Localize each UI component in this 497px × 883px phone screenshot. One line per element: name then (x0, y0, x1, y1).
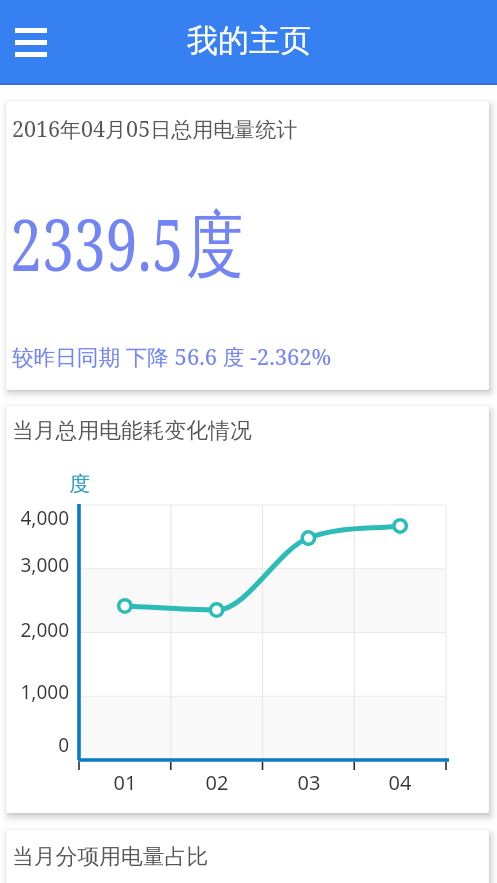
staticText: 较昨日同期 下降 56.6 度 -2.362% (12, 341, 332, 371)
button[interactable]: 2016年04月05日总用电量统计 (6, 101, 489, 390)
staticText: 01 (100, 769, 150, 796)
staticText: 0 (8, 732, 69, 758)
staticText: 当月分项用电量占比 (12, 843, 209, 870)
staticText: 当月总用电能耗变化情况 (12, 417, 252, 444)
button[interactable]: 当月总用电能耗变化情况 (6, 406, 489, 813)
staticText: 3,000 (8, 552, 69, 578)
staticText: 4,000 (8, 505, 69, 531)
staticText: 04 (375, 769, 425, 796)
button[interactable]: Open navigation menu (5, 16, 57, 68)
staticText: 2,000 (8, 617, 69, 643)
staticText: 度 (69, 471, 90, 497)
button[interactable]: 当月分项用电量占比 (6, 830, 489, 883)
staticText: 03 (284, 769, 334, 796)
staticText: 2339.5 (10, 196, 184, 292)
staticText: 2016年04月05日总用电量统计 (12, 114, 298, 143)
staticText: 02 (192, 769, 242, 796)
staticText: 度 (186, 200, 244, 292)
staticText: 我的主页 (187, 21, 311, 60)
staticText: 1,000 (8, 679, 69, 705)
